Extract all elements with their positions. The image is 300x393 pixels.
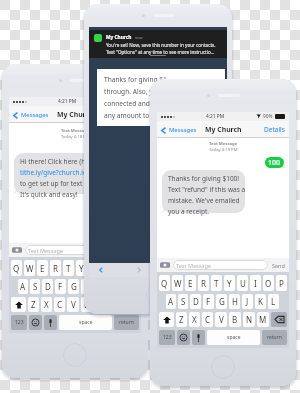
button[interactable]: Y	[76, 260, 87, 276]
button[interactable]: H	[229, 294, 240, 309]
button[interactable]: F	[203, 294, 214, 309]
button[interactable]: space	[207, 330, 260, 345]
button[interactable]: O	[263, 275, 274, 291]
button[interactable]: C	[202, 312, 213, 327]
button[interactable]: Dictate	[192, 330, 205, 345]
button[interactable]: I	[102, 260, 113, 276]
staticText: U	[240, 278, 246, 289]
button[interactable]: Emoji	[177, 330, 190, 345]
button[interactable]: A	[166, 294, 176, 309]
button[interactable]: Camera	[12, 245, 22, 255]
staticText: any amount to yo	[104, 111, 159, 120]
button[interactable]: Q	[159, 275, 170, 291]
staticText: Today 4:18 PM	[61, 134, 90, 140]
button[interactable]: Text Message	[173, 260, 268, 270]
button[interactable]: J	[242, 294, 253, 309]
button[interactable]: Shift	[11, 297, 26, 312]
staticText: B	[232, 314, 238, 325]
button[interactable]: R	[50, 260, 61, 276]
button[interactable]: S	[30, 279, 40, 294]
button[interactable]: Backspace	[271, 312, 287, 327]
button[interactable]: G	[68, 279, 79, 294]
button[interactable]: H	[81, 279, 92, 294]
staticText: Z	[31, 299, 36, 310]
button[interactable]: D	[42, 279, 53, 294]
button[interactable]: M	[257, 312, 269, 327]
button[interactable]: Z	[28, 297, 39, 312]
button[interactable]: Q	[11, 260, 22, 276]
button[interactable]: U	[237, 275, 248, 291]
button[interactable]: R	[198, 275, 209, 291]
button[interactable]: Y	[224, 275, 235, 291]
staticText: C	[205, 314, 211, 325]
button[interactable]: I	[250, 275, 261, 291]
button[interactable]: Details	[112, 107, 141, 122]
button[interactable]: Messages	[157, 124, 201, 136]
button[interactable]: Details	[260, 122, 289, 137]
staticText: return	[267, 334, 282, 341]
staticText: T	[214, 278, 219, 289]
button[interactable]: 123	[11, 315, 27, 330]
button[interactable]: return	[262, 330, 287, 345]
button[interactable]: T	[63, 260, 74, 276]
button[interactable]: B	[229, 312, 241, 327]
staticText: you a receipt.	[168, 207, 210, 216]
staticText: Hi there! Click here (h	[20, 157, 86, 166]
staticText: G	[219, 296, 225, 307]
button[interactable]: space	[59, 315, 112, 330]
button[interactable]: X	[41, 297, 52, 312]
button[interactable]: Send	[271, 260, 286, 271]
staticText: I	[254, 278, 257, 289]
button[interactable]: K	[255, 294, 266, 309]
button[interactable]: W	[24, 260, 35, 276]
button[interactable]: Camera	[160, 260, 170, 270]
button[interactable]: D	[190, 294, 201, 309]
button[interactable]: Emoji	[29, 315, 42, 330]
button[interactable]: N	[243, 312, 255, 327]
button[interactable]: A	[18, 279, 28, 294]
button[interactable]: F	[55, 279, 66, 294]
button[interactable]: 123	[159, 330, 175, 345]
button[interactable]: Z	[176, 312, 187, 327]
staticText: V	[71, 299, 76, 310]
button[interactable]: W	[172, 275, 183, 291]
staticText: W	[174, 278, 182, 289]
button[interactable]: O	[115, 260, 126, 276]
button[interactable]: E	[37, 260, 48, 276]
staticText: to get set up for text g	[20, 179, 89, 188]
button[interactable]: B	[81, 297, 93, 312]
staticText: B	[84, 299, 90, 310]
button[interactable]: Dictate	[44, 315, 57, 330]
staticText: 90%	[263, 113, 273, 120]
button[interactable]: T	[211, 275, 222, 291]
button[interactable]: C	[54, 297, 65, 312]
button[interactable]: L	[268, 294, 279, 309]
button[interactable]: P	[276, 275, 287, 291]
staticText: G	[71, 281, 77, 292]
button[interactable]: U	[89, 260, 100, 276]
button[interactable]: return	[114, 315, 139, 330]
button[interactable]: S	[178, 294, 188, 309]
button[interactable]: Messages	[9, 109, 53, 121]
button[interactable]: P	[128, 260, 139, 276]
button[interactable]: V	[215, 312, 227, 327]
button[interactable]: V	[67, 297, 79, 312]
button[interactable]: E	[185, 275, 196, 291]
button[interactable]: G	[216, 294, 227, 309]
button[interactable]: Text Message	[25, 245, 120, 255]
button[interactable]: Shift	[159, 312, 174, 327]
staticText: My Church	[57, 110, 94, 119]
staticText: Messages	[169, 126, 197, 134]
button[interactable]: X	[189, 312, 200, 327]
